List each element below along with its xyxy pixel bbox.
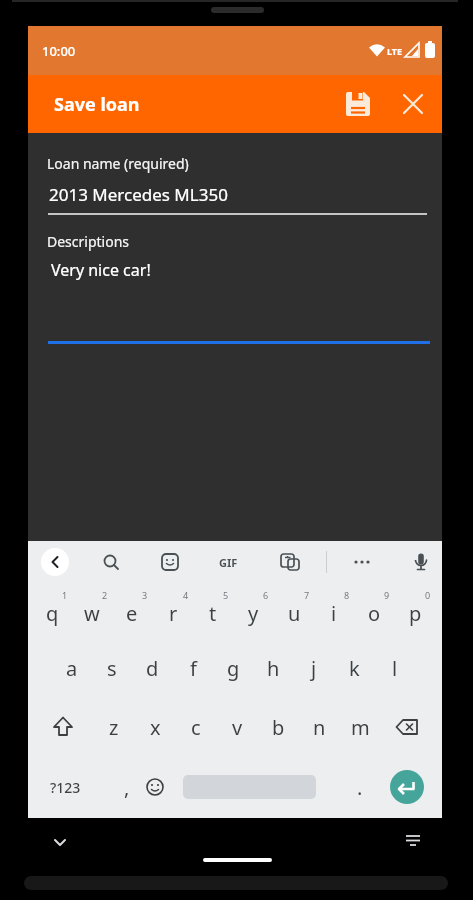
button[interactable]: j [294, 645, 334, 691]
staticText: j [311, 655, 317, 682]
button[interactable]: l [375, 645, 415, 691]
staticText: 3 [142, 589, 148, 601]
button[interactable] [334, 80, 382, 128]
staticText: l [392, 655, 398, 682]
staticText: w [84, 600, 100, 627]
staticText: 5 [223, 589, 229, 601]
button[interactable]: o [354, 590, 394, 636]
staticText: s [107, 655, 117, 682]
button[interactable]: v [217, 704, 257, 750]
button[interactable]: n [299, 704, 339, 750]
button[interactable]: s [92, 645, 132, 691]
staticText: q [46, 600, 59, 627]
staticText: 2 [102, 589, 108, 601]
button[interactable]: c [176, 704, 216, 750]
staticText: , [124, 774, 130, 801]
button[interactable]: e [112, 590, 152, 636]
button[interactable]: h [253, 645, 293, 691]
staticText: Very nice car! [51, 259, 151, 281]
button[interactable]: k [334, 645, 374, 691]
staticText: o [368, 600, 381, 627]
button[interactable]: u [274, 590, 314, 636]
staticText: 9 [384, 589, 390, 601]
staticText: m [351, 714, 370, 741]
staticText: 0 [425, 589, 431, 601]
button[interactable]: . [345, 767, 375, 807]
staticText: i [331, 600, 337, 627]
staticText: x [150, 714, 161, 741]
staticText: y [248, 600, 259, 627]
button[interactable]: ?123 [35, 767, 95, 807]
staticText: 10:00 [42, 42, 76, 60]
staticText: d [146, 655, 159, 682]
button[interactable]: GIF [206, 547, 250, 577]
staticText: 8 [344, 589, 350, 601]
button[interactable]: f [173, 645, 213, 691]
staticText: p [409, 600, 422, 627]
button[interactable]: z [94, 704, 134, 750]
staticText: 2013 Mercedes ML350 [49, 183, 228, 206]
button[interactable]: q [32, 590, 72, 636]
button[interactable] [390, 770, 424, 804]
button[interactable]: r [153, 590, 193, 636]
button[interactable] [407, 548, 435, 576]
button[interactable] [399, 826, 427, 854]
button[interactable]: w [72, 590, 112, 636]
staticText: c [191, 714, 201, 741]
button[interactable] [390, 710, 424, 744]
staticText: v [232, 714, 243, 741]
staticText: u [288, 600, 301, 627]
staticText: 7 [304, 589, 310, 601]
button[interactable]: t [193, 590, 233, 636]
button[interactable] [97, 548, 125, 576]
staticText: 4 [183, 589, 189, 601]
staticText: z [109, 714, 119, 741]
button[interactable]: g [213, 645, 253, 691]
button[interactable]: i [314, 590, 354, 636]
staticText: n [313, 714, 326, 741]
button[interactable] [389, 80, 437, 128]
staticText: r [169, 600, 178, 627]
staticText: k [349, 655, 360, 682]
staticText: Loan name (required) [47, 154, 189, 173]
button[interactable]: y [233, 590, 273, 636]
button[interactable] [46, 828, 74, 856]
button[interactable]: a [52, 645, 92, 691]
button[interactable]: x [135, 704, 175, 750]
staticText: a [66, 655, 78, 682]
button[interactable] [141, 773, 169, 801]
staticText: Save loan [54, 92, 140, 117]
button[interactable]: d [132, 645, 172, 691]
staticText: t [209, 600, 217, 627]
button[interactable]: m [340, 704, 380, 750]
staticText: 6 [263, 589, 269, 601]
button[interactable] [41, 548, 69, 576]
staticText: 1 [62, 589, 68, 601]
staticText: LTE [387, 45, 403, 57]
staticText: . [357, 774, 363, 801]
staticText: f [190, 655, 197, 682]
button[interactable]: p [395, 590, 435, 636]
button[interactable] [348, 548, 376, 576]
staticText: Descriptions [47, 232, 130, 251]
staticText: b [272, 714, 285, 741]
staticText: ?123 [50, 778, 81, 797]
staticText: GIF [219, 555, 238, 570]
button[interactable]: b [258, 704, 298, 750]
staticText: e [126, 600, 138, 627]
button[interactable] [46, 710, 80, 744]
staticText: h [267, 655, 280, 682]
button[interactable]: , [112, 767, 142, 807]
staticText: g [227, 655, 240, 682]
button[interactable] [156, 548, 184, 576]
button[interactable] [276, 548, 304, 576]
